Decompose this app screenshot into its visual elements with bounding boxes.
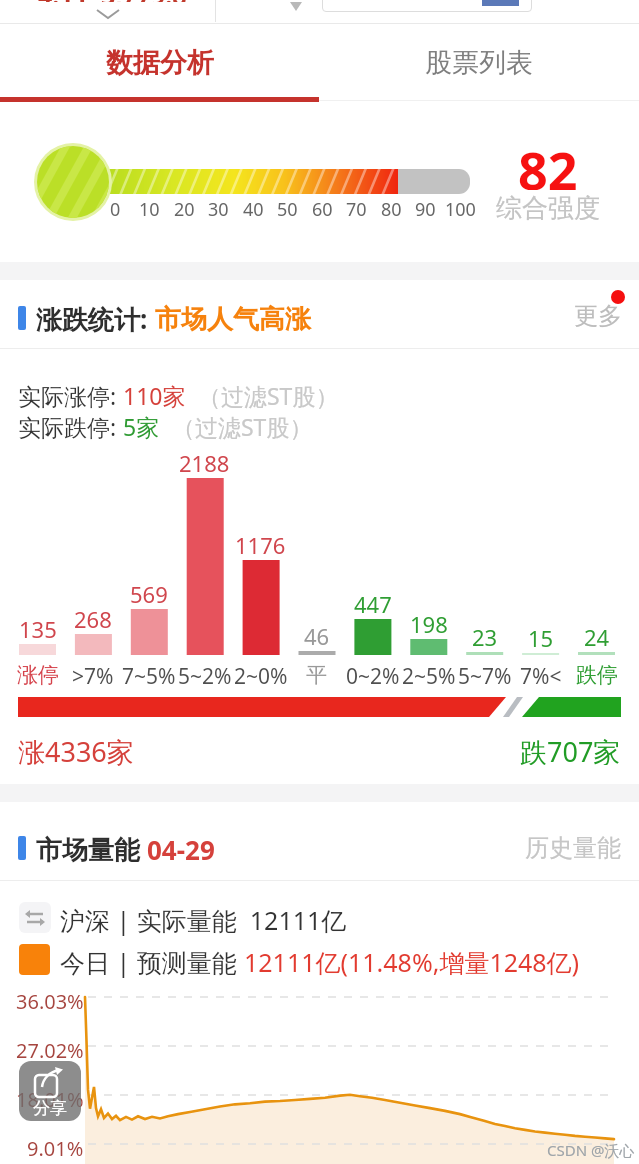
staticText: 36.03% [16,988,84,1012]
staticText: 0~2% [346,662,400,688]
staticText: 实际涨停: [18,380,123,411]
staticText: （过滤ST股） [186,380,339,411]
staticText: 2~0% [234,662,288,688]
staticText: 268 [74,604,112,630]
staticText: 1176 [235,530,286,556]
staticText: 今日 | 预测量能 [60,945,244,979]
staticText: 24 [584,622,610,648]
staticText: 涨4336家 [18,733,134,770]
staticText: 12111亿(11.48%,增量1248亿) [244,945,580,979]
staticText: 40 [243,197,264,219]
staticText: 23 [472,622,498,648]
staticText: 90 [415,197,436,219]
staticText: 0 [110,197,121,219]
staticText: 5家 [123,411,160,442]
staticText: 市场人气高涨 [155,303,311,336]
staticText: 447 [354,589,392,615]
staticText: 综合强度 [496,192,600,222]
staticText: 135 [19,614,57,640]
staticText: 涨停 [17,662,59,688]
staticText: 80 [381,197,402,219]
staticText: 198 [410,609,448,635]
button[interactable]: 分享 [19,1061,81,1121]
staticText: 5~7% [458,662,512,688]
staticText: 跌停 [576,662,618,688]
staticText: 50 [277,197,298,219]
staticText: >7% [72,662,114,688]
staticText: 20 [174,197,195,219]
staticText: 100 [445,197,476,219]
staticText: 04-29 [147,832,215,867]
staticText: 18.01% [16,1086,84,1110]
staticText: 5~2% [178,662,232,688]
staticText: 4:11 3,779.8 [38,0,187,2]
staticText: 15 [528,623,554,649]
staticText: 数据分析 [106,46,214,80]
staticText: 历史量能 [525,833,621,863]
staticText: 股票列表 [425,46,533,80]
staticText: 跌707家 [520,733,621,765]
staticText: 市场量能 [36,831,147,867]
staticText: 更多 [574,301,622,331]
staticText: 涨跌统计: [36,301,155,337]
staticText: 实际跌停: [18,411,123,442]
staticText: 82 [518,134,578,190]
staticText: 70 [346,197,367,219]
staticText: （过滤ST股） [160,411,313,442]
staticText: 2188 [179,448,230,474]
button[interactable]: 数据分析 [0,24,319,102]
staticText: CSDN @沃心 [547,1140,635,1160]
staticText: 7%< [520,662,562,688]
button[interactable]: 股票列表 [319,24,639,102]
staticText: 46 [304,621,330,647]
staticText: 2~5% [402,662,456,688]
button[interactable]: 更多 [550,299,622,333]
staticText: 30 [208,197,229,219]
staticText: 沪深 | 实际量能 12111亿 [60,903,347,937]
staticText: 9.01% [27,1135,84,1159]
staticText: 569 [130,579,168,605]
staticText: 分享 [33,1098,67,1119]
staticText: 7~5% [122,662,176,688]
button[interactable]: 历史量能 [480,833,621,863]
staticText: 10 [139,197,160,219]
staticText: 27.02% [16,1037,84,1061]
staticText: 平 [306,662,327,688]
staticText: 110家 [123,380,186,411]
staticText: 60 [312,197,333,219]
